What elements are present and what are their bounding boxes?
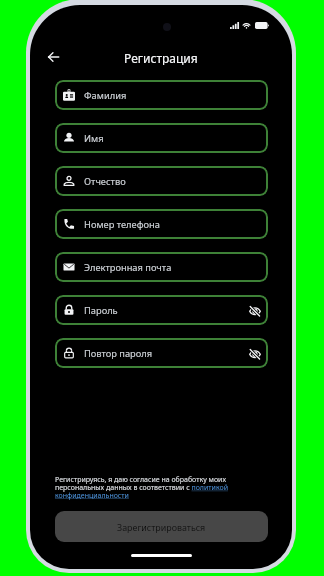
button[interactable]: Показать пароль bbox=[247, 303, 263, 319]
button[interactable]: Повтор пароля bbox=[55, 338, 268, 368]
button[interactable]: Зарегистрироваться bbox=[55, 511, 268, 542]
staticText: Регистрация bbox=[124, 50, 198, 65]
staticText: Номер телефона bbox=[84, 218, 160, 231]
staticText: Фамилия bbox=[84, 89, 127, 102]
button[interactable]: Электронная почта bbox=[55, 252, 268, 282]
button[interactable]: Фамилия bbox=[55, 80, 268, 110]
staticText: Пароль bbox=[84, 304, 118, 317]
staticText: Электронная почта bbox=[84, 261, 172, 274]
button[interactable]: Имя bbox=[55, 123, 268, 153]
button[interactable]: Пароль bbox=[55, 295, 268, 325]
staticText: Имя bbox=[84, 132, 104, 145]
button[interactable]: Отчество bbox=[55, 166, 268, 196]
button[interactable]: Номер телефона bbox=[55, 209, 268, 239]
staticText: Регистрируясь, я даю согласие на обработ… bbox=[55, 475, 231, 500]
staticText: Отчество bbox=[84, 175, 126, 188]
staticText: Зарегистрироваться bbox=[117, 521, 206, 533]
button[interactable]: Показать пароль bbox=[247, 346, 263, 362]
staticText: Повтор пароля bbox=[84, 347, 153, 360]
button[interactable]: Назад bbox=[41, 45, 65, 69]
